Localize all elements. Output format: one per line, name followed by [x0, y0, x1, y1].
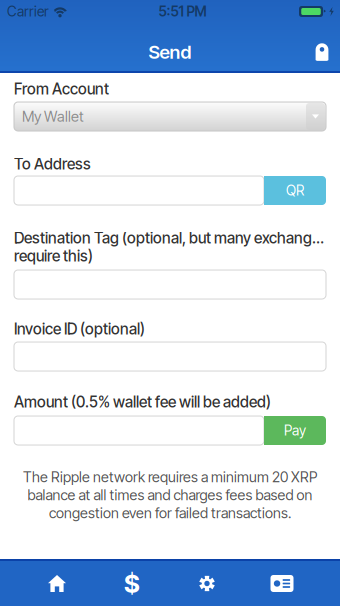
staticText: require this) [14, 247, 93, 265]
button[interactable]: Contacts [244, 561, 319, 606]
staticText: Send [148, 41, 191, 63]
staticText: $ [124, 568, 140, 599]
button[interactable]: Pay [264, 416, 326, 445]
staticText: congestion even for failed transactions. [49, 504, 291, 522]
staticText: Invoice ID (optional) [14, 320, 145, 338]
staticText: balance at all times and charges fees ba… [27, 486, 312, 504]
staticText: My Wallet [22, 108, 84, 125]
staticText: Carrier [7, 3, 49, 20]
staticText: Destination Tag (optional, but many exch… [14, 229, 326, 247]
staticText: From Account [14, 80, 109, 98]
staticText: The Ripple network requires a minimum 20… [23, 468, 317, 486]
button[interactable]: Settings [169, 561, 244, 606]
button[interactable]: Home [19, 561, 94, 606]
staticText: Pay [284, 422, 306, 439]
staticText: To Address [14, 155, 91, 173]
button[interactable]: Balance [94, 561, 169, 606]
button[interactable]: QR [264, 176, 326, 205]
staticText: 5:51 PM [158, 3, 206, 20]
button[interactable]: Secure [305, 37, 340, 66]
staticText: Amount (0.5% wallet fee will be added) [14, 393, 271, 411]
staticText: QR [286, 182, 304, 199]
button[interactable]: My Wallet [14, 102, 326, 131]
